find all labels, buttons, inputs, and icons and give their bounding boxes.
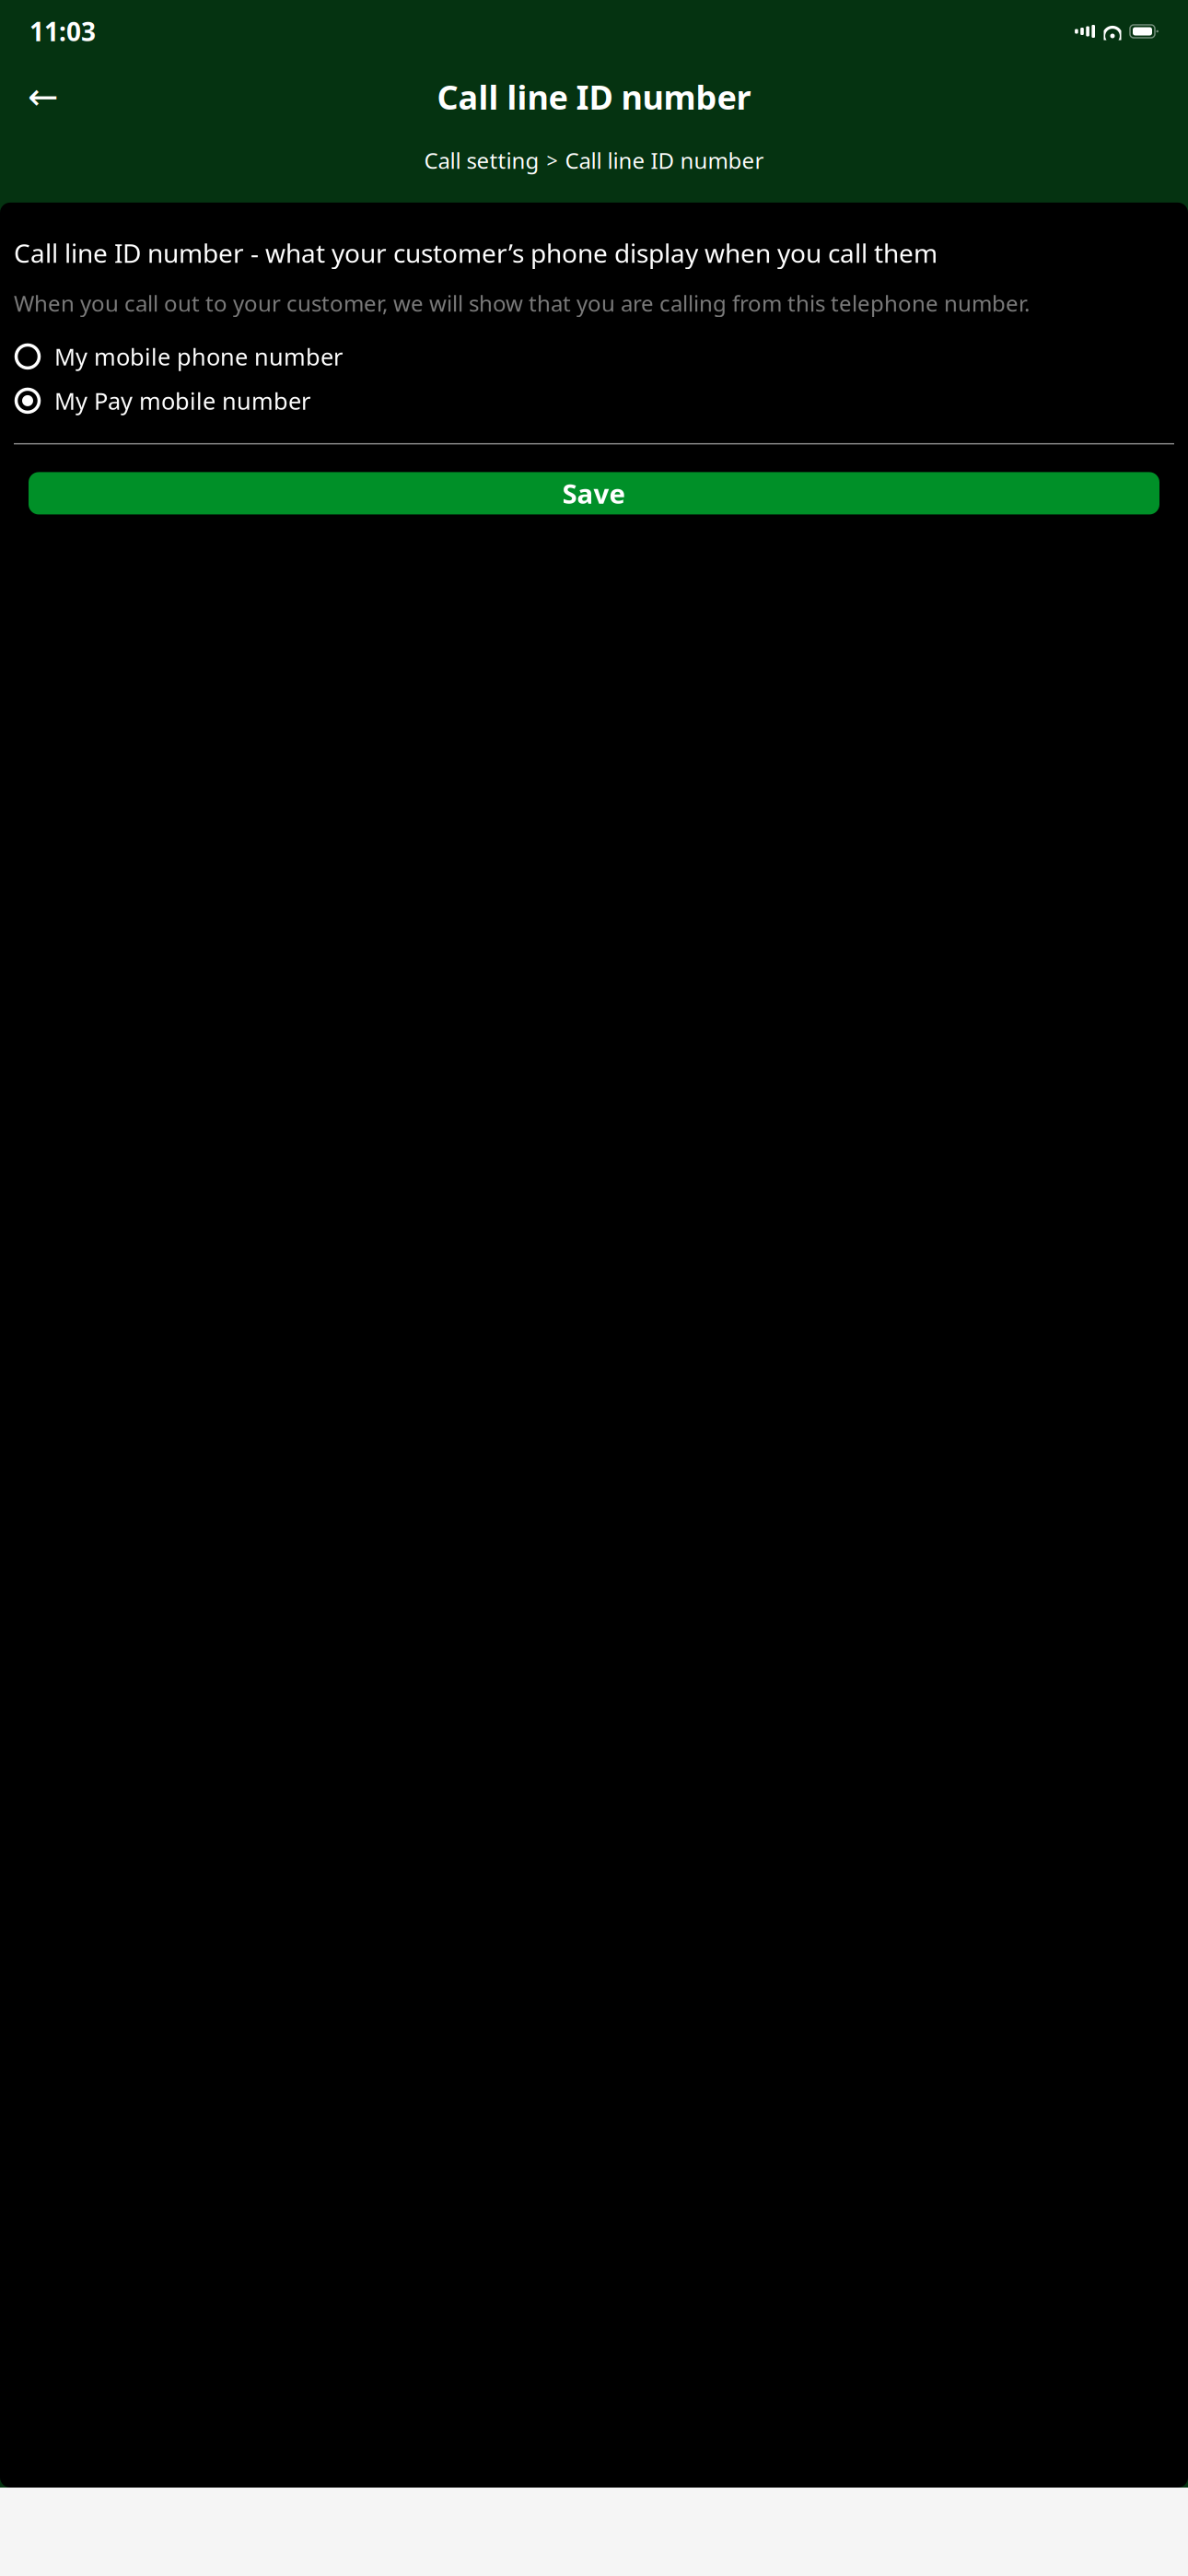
- staticText: Call line ID number: [565, 146, 764, 175]
- button[interactable]: Call setting: [424, 146, 539, 175]
- button[interactable]: My Pay mobile number: [14, 382, 1174, 419]
- staticText: My mobile phone number: [54, 341, 343, 372]
- staticText: My Pay mobile number: [54, 385, 310, 416]
- staticText: Save: [562, 475, 626, 511]
- button[interactable]: Save: [29, 472, 1159, 514]
- staticText: Call line ID number: [437, 75, 751, 119]
- staticText: When you call out to your customer, we w…: [14, 288, 1030, 318]
- staticText: Call line ID number - what your customer…: [14, 236, 938, 270]
- staticText: 11:03: [29, 14, 96, 48]
- staticText: Call setting: [424, 146, 539, 175]
- staticText: ←: [28, 76, 59, 118]
- staticText: >: [547, 147, 558, 173]
- button[interactable]: Back: [20, 74, 66, 120]
- button[interactable]: My mobile phone number: [14, 338, 1174, 375]
